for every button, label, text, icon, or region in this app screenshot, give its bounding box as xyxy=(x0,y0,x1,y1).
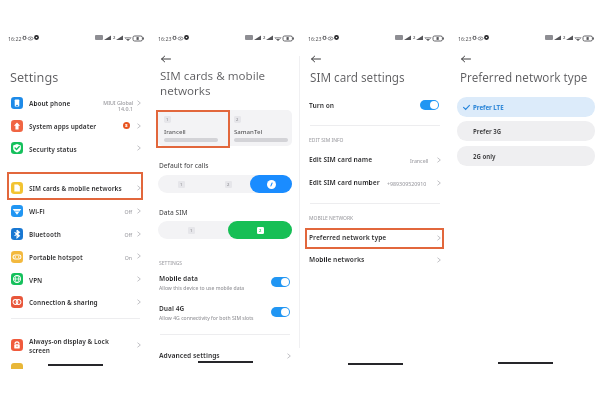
staticText: 2 xyxy=(227,182,230,188)
staticText: Prefer LTE xyxy=(473,103,504,111)
staticText: Turn on xyxy=(309,101,335,110)
staticText: On xyxy=(104,254,132,261)
staticText: 2 xyxy=(113,35,116,41)
staticText: SamanTel xyxy=(234,127,263,135)
staticText: 2 xyxy=(413,35,416,41)
staticText: Irancell xyxy=(410,157,429,164)
staticText: Mobile data xyxy=(159,274,199,283)
staticText: Preferred network type xyxy=(309,233,387,242)
staticText: 2 xyxy=(263,35,266,41)
staticText: 3 xyxy=(125,123,128,129)
staticText: 1 xyxy=(190,228,193,234)
staticText: Off xyxy=(104,231,132,238)
staticText: 16:23 xyxy=(158,35,172,42)
button[interactable] xyxy=(420,100,439,110)
staticText: Default for calls xyxy=(159,161,209,170)
staticText: Data SIM xyxy=(159,208,188,217)
staticText: Allow 4G connectivity for both SIM slots xyxy=(159,315,254,322)
staticText: 1 xyxy=(166,117,169,123)
button[interactable] xyxy=(250,175,292,193)
button[interactable]: Back xyxy=(459,52,472,65)
staticText: MIUI Global 14.0.1 xyxy=(88,99,133,113)
button[interactable] xyxy=(271,307,290,317)
staticText: 16:22 xyxy=(8,35,22,42)
staticText: Preferred network type xyxy=(460,69,588,85)
button[interactable] xyxy=(457,146,595,166)
staticText: 1 xyxy=(180,182,183,188)
staticText: Prefer 3G xyxy=(473,127,502,135)
staticText: SETTINGS xyxy=(159,260,183,267)
staticText: SIM cards & mobile networks xyxy=(160,68,266,99)
staticText: Advanced settings xyxy=(159,351,220,360)
staticText: About phone xyxy=(29,99,71,108)
staticText: 16:23 xyxy=(308,35,322,42)
staticText: Connection & sharing xyxy=(29,298,98,307)
staticText: Wi-Fi xyxy=(29,207,45,216)
staticText: Dual 4G xyxy=(159,304,185,313)
staticText: Mobile networks xyxy=(309,255,365,264)
staticText: 2 xyxy=(259,228,262,234)
button[interactable]: 1 xyxy=(188,227,195,234)
staticText: Bluetooth xyxy=(29,230,61,239)
staticText: VPN xyxy=(29,276,43,285)
staticText: 2 xyxy=(236,117,239,123)
button[interactable]: Back xyxy=(159,52,172,65)
button[interactable] xyxy=(271,277,290,287)
staticText: Portable hotspot xyxy=(29,253,83,262)
staticText: Off xyxy=(104,208,132,215)
staticText: Edit SIM card number xyxy=(309,178,380,187)
button[interactable]: 2 xyxy=(234,116,241,123)
button[interactable]: 2 xyxy=(228,221,292,239)
staticText: Irancell xyxy=(164,127,186,135)
staticText: SIM card settings xyxy=(310,69,405,85)
staticText: 2G only xyxy=(473,152,496,160)
button[interactable]: 1 xyxy=(164,116,171,123)
button[interactable] xyxy=(457,121,595,141)
staticText: Allow this device to use mobile data xyxy=(159,285,245,292)
staticText: Always-on display & Lock screen xyxy=(29,337,109,355)
staticText: Edit SIM card name xyxy=(309,155,373,164)
button[interactable]: 2 xyxy=(225,181,232,188)
button[interactable]: Back xyxy=(309,52,322,65)
staticText: SIM cards & mobile networks xyxy=(29,184,122,193)
staticText: 16:23 xyxy=(458,35,472,42)
staticText: System apps updater xyxy=(29,122,97,131)
staticText: +989309520910 xyxy=(387,180,427,187)
staticText: 2 xyxy=(563,35,566,41)
staticText: MOBILE NETWORK xyxy=(309,215,354,222)
button[interactable] xyxy=(457,97,595,117)
button[interactable]: 1 xyxy=(178,181,185,188)
staticText: EDIT SIM INFO xyxy=(309,137,344,144)
staticText: Security status xyxy=(29,145,77,154)
staticText: Settings xyxy=(10,68,59,85)
